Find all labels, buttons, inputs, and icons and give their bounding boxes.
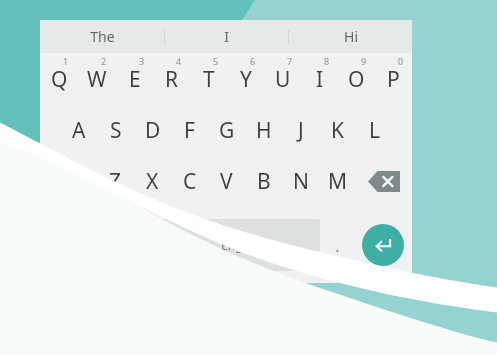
staticText: F — [184, 116, 195, 145]
staticText: P — [387, 65, 400, 94]
staticText: I — [316, 65, 324, 94]
button[interactable]: T — [190, 53, 227, 105]
staticText: E — [129, 65, 141, 94]
staticText: 3 — [139, 55, 145, 67]
button[interactable]: W — [78, 53, 116, 105]
staticText: W — [87, 65, 107, 94]
staticText: 7 — [287, 55, 293, 67]
staticText: 9 — [361, 55, 367, 67]
staticText: . — [335, 234, 340, 257]
button[interactable]: F — [171, 105, 208, 156]
button[interactable]: C — [171, 156, 208, 207]
button[interactable]: R — [153, 53, 190, 105]
button[interactable]: M — [319, 156, 356, 207]
staticText: Hi — [344, 27, 358, 46]
staticText: 6 — [250, 55, 256, 67]
staticText: R — [165, 65, 179, 94]
button[interactable]: D — [134, 105, 171, 156]
button[interactable]: O — [338, 53, 375, 105]
staticText: J — [298, 116, 304, 145]
staticText: A — [72, 116, 86, 145]
button[interactable]: Backspace — [356, 156, 412, 207]
button[interactable]: Y — [227, 53, 264, 105]
button[interactable]: A — [60, 105, 97, 156]
button[interactable]: B — [245, 156, 282, 207]
button[interactable]: U — [264, 53, 301, 105]
staticText: Y — [240, 65, 252, 94]
button[interactable]: K — [319, 105, 356, 156]
staticText: 1 — [63, 55, 69, 67]
button[interactable]: Hi — [289, 20, 412, 53]
staticText: 0 — [398, 55, 404, 67]
staticText: T — [203, 65, 215, 94]
staticText: N — [293, 167, 309, 196]
button[interactable]: Z — [97, 156, 134, 207]
staticText: O — [348, 65, 365, 94]
staticText: C — [183, 167, 197, 196]
staticText: M — [328, 167, 348, 196]
staticText: V — [220, 167, 233, 196]
button[interactable]: S — [97, 105, 134, 156]
button[interactable]: I — [165, 20, 288, 53]
staticText: I — [224, 27, 229, 46]
staticText: D — [145, 116, 161, 145]
staticText: L — [369, 116, 381, 145]
button[interactable]: I — [301, 53, 338, 105]
button[interactable]: E — [116, 53, 153, 105]
button[interactable]: . — [320, 207, 354, 283]
staticText: U — [275, 65, 291, 94]
staticText: 5 — [213, 55, 219, 67]
staticText: The — [90, 27, 115, 46]
button[interactable]: V — [208, 156, 245, 207]
button[interactable]: L — [356, 105, 393, 156]
button[interactable]: English — [162, 219, 320, 271]
staticText: 8 — [324, 55, 330, 67]
button[interactable]: X — [134, 156, 171, 207]
staticText: K — [331, 116, 344, 145]
staticText: H — [256, 116, 272, 145]
button[interactable]: N — [282, 156, 319, 207]
button[interactable]: The — [40, 20, 164, 53]
staticText: English — [221, 237, 262, 253]
staticText: G — [219, 116, 235, 145]
staticText: X — [146, 167, 159, 196]
staticText: Z — [109, 167, 122, 196]
button[interactable]: G — [208, 105, 245, 156]
button[interactable]: Q — [40, 53, 78, 105]
staticText: B — [257, 167, 271, 196]
button[interactable]: Shift — [40, 156, 97, 207]
button[interactable]: Enter — [362, 224, 404, 266]
staticText: 2 — [101, 55, 107, 67]
button[interactable]: J — [282, 105, 319, 156]
staticText: Q — [51, 65, 68, 94]
staticText: 4 — [176, 55, 182, 67]
button[interactable]: P — [375, 53, 412, 105]
staticText: S — [110, 116, 122, 145]
button[interactable]: H — [245, 105, 282, 156]
